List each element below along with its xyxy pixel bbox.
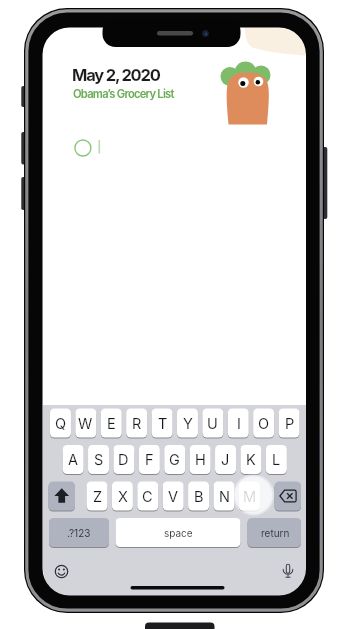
button[interactable]: R (126, 409, 147, 438)
staticText: U (207, 415, 218, 433)
button[interactable]: Z (87, 482, 108, 511)
staticText: H (195, 451, 206, 469)
staticText: space (164, 527, 193, 539)
button[interactable]: A (63, 445, 84, 474)
button[interactable]: H (190, 445, 211, 474)
button[interactable]: V (163, 482, 184, 511)
staticText: J (221, 451, 230, 469)
button[interactable]: P (279, 409, 300, 438)
staticText: X (118, 488, 128, 506)
staticText: N (219, 488, 230, 506)
staticText: M (243, 488, 257, 506)
staticText: .?123 (67, 527, 91, 539)
staticText: A (68, 451, 79, 469)
button[interactable]: M (239, 482, 260, 511)
button[interactable]: J (215, 445, 236, 474)
staticText: T (158, 415, 168, 433)
staticText: L (272, 451, 281, 469)
staticText: B (194, 488, 204, 506)
staticText: G (169, 451, 180, 469)
button[interactable]: F (139, 445, 160, 474)
button[interactable]: S (88, 445, 109, 474)
button[interactable] (69, 134, 279, 162)
staticText: W (78, 415, 93, 433)
staticText: E (107, 415, 116, 433)
button[interactable]: U (202, 409, 223, 438)
staticText: K (246, 451, 256, 469)
button[interactable]: T (152, 409, 173, 438)
staticText: R (132, 415, 142, 433)
button[interactable]: X (112, 482, 133, 511)
staticText: Z (93, 488, 103, 506)
button[interactable]: W (75, 409, 96, 438)
staticText: return (261, 527, 290, 539)
button[interactable]: C (137, 482, 158, 511)
staticText: Y (183, 415, 193, 433)
button[interactable]: return (248, 518, 302, 547)
button[interactable]: O (253, 409, 274, 438)
staticText: P (285, 415, 295, 433)
staticText: Q (55, 415, 67, 433)
button[interactable]: space (116, 518, 241, 547)
staticText: F (145, 451, 154, 469)
staticText: D (118, 451, 129, 469)
staticText: C (142, 488, 153, 506)
button[interactable]: N (214, 482, 235, 511)
button[interactable]: Y (177, 409, 198, 438)
button[interactable]: E (101, 409, 122, 438)
button[interactable]: D (113, 445, 134, 474)
button[interactable]: I (228, 409, 249, 438)
button[interactable]: Obama’s Grocery List (73, 87, 174, 101)
button[interactable]: Q (50, 409, 71, 438)
button[interactable]: K (240, 445, 261, 474)
staticText: May 2, 2020 (72, 65, 160, 85)
button[interactable]: G (164, 445, 185, 474)
button[interactable]: B (188, 482, 209, 511)
button[interactable]: L (266, 445, 287, 474)
staticText: O (258, 415, 270, 433)
button[interactable]: .?123 (49, 518, 109, 547)
staticText: I (237, 415, 241, 433)
staticText: V (168, 488, 179, 506)
staticText: S (94, 451, 104, 469)
